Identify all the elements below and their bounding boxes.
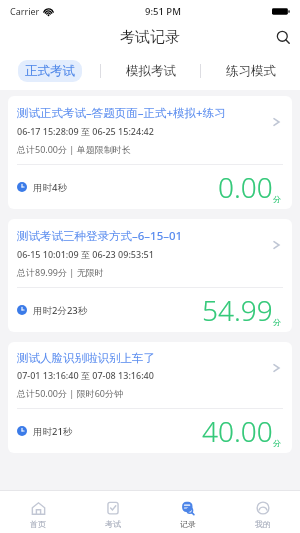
staticText: 我的	[255, 519, 271, 529]
staticText: 总计89.99分 | 无限时	[17, 266, 104, 278]
staticText: 用时2分23秒	[33, 304, 88, 317]
button[interactable]: 记录	[150, 496, 225, 529]
staticText: 54.99	[202, 291, 273, 329]
staticText: 测试人脸识别啦识别上车了	[17, 351, 155, 365]
button[interactable]: 练习模式	[201, 60, 300, 82]
staticText: 用时4秒	[33, 181, 67, 194]
staticText: 用时21秒	[33, 425, 73, 438]
staticText: 分	[273, 194, 281, 204]
staticText: 记录	[180, 519, 196, 529]
button[interactable]: 测试人脸识别啦识别上车了	[8, 342, 292, 453]
button[interactable]: 测试正式考试–答题页面–正式+模拟+练习	[8, 96, 292, 209]
button[interactable]: Search	[266, 22, 300, 52]
staticText: 考试	[105, 519, 121, 529]
staticText: 首页	[30, 519, 46, 529]
staticText: 测试正式考试–答题页面–正式+模拟+练习	[17, 105, 226, 121]
staticText: 40.00	[202, 412, 273, 450]
staticText: 06-15 10:01:09 至 06-23 09:53:51	[17, 248, 154, 260]
staticText: 06-17 15:28:09 至 06-25 15:24:42	[17, 125, 154, 137]
button[interactable]: 考试	[75, 496, 150, 529]
button[interactable]: 首页	[0, 496, 75, 529]
staticText: 练习模式	[226, 63, 276, 79]
staticText: 0.00	[218, 168, 273, 206]
staticText: 9:51 PM	[145, 5, 181, 18]
staticText: 07-01 13:16:40 至 07-08 13:16:40	[17, 369, 154, 381]
staticText: 模拟考试	[126, 63, 176, 79]
button[interactable]: 测试考试三种登录方式–6–15–01	[8, 219, 292, 332]
button[interactable]: 模拟考试	[101, 60, 200, 82]
staticText: Carrier	[10, 5, 40, 17]
staticText: 总计50.00分 | 单题限制时长	[17, 143, 131, 155]
button[interactable]: 我的	[225, 496, 300, 529]
staticText: 正式考试	[25, 63, 75, 79]
staticText: 测试考试三种登录方式–6–15–01	[17, 228, 183, 244]
staticText: 考试记录	[120, 28, 180, 47]
staticText: 分	[273, 438, 281, 448]
staticText: 总计50.00分 | 限时60分钟	[17, 387, 123, 399]
button[interactable]: 正式考试	[0, 60, 100, 82]
staticText: 分	[273, 317, 281, 327]
